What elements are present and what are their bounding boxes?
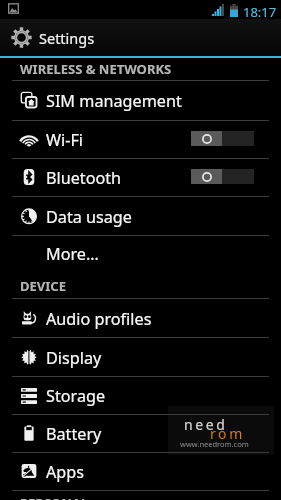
button[interactable]: Display [0, 338, 281, 377]
button[interactable]: SIM management [0, 81, 281, 121]
button[interactable]: Toggle [191, 169, 254, 184]
button[interactable]: Wi-Fi [0, 121, 281, 159]
button[interactable]: Storage [0, 376, 281, 415]
staticText: More… [46, 243, 99, 265]
staticText: Bluetooth [46, 167, 122, 189]
staticText: www.needrom.com [180, 439, 249, 449]
button[interactable]: More… [0, 235, 281, 273]
staticText: 18:17 [243, 3, 277, 21]
button[interactable]: Audio profiles [0, 299, 281, 338]
staticText: Apps [46, 461, 85, 483]
button[interactable]: Battery [0, 415, 281, 453]
staticText: Battery [46, 423, 102, 445]
staticText: SIM management [46, 90, 182, 112]
staticText: Settings [39, 28, 95, 48]
button[interactable]: Settings [0, 19, 281, 56]
staticText: WIRELESS & NETWORKS [20, 60, 172, 78]
staticText: rom [210, 424, 245, 443]
staticText: Data usage [46, 206, 132, 228]
staticText: need [184, 415, 228, 434]
staticText: Display [46, 347, 102, 369]
other: Screenshot [7, 2, 20, 15]
button[interactable]: Data usage [0, 198, 281, 236]
button[interactable]: Bluetooth [0, 159, 281, 197]
button[interactable]: Apps [0, 453, 281, 491]
staticText: Audio profiles [46, 308, 152, 330]
staticText: Wi-Fi [46, 129, 84, 151]
staticText: PERSONAL [20, 494, 89, 500]
staticText: DEVICE [20, 277, 66, 295]
button[interactable]: Toggle [191, 131, 254, 146]
staticText: Storage [46, 385, 106, 407]
